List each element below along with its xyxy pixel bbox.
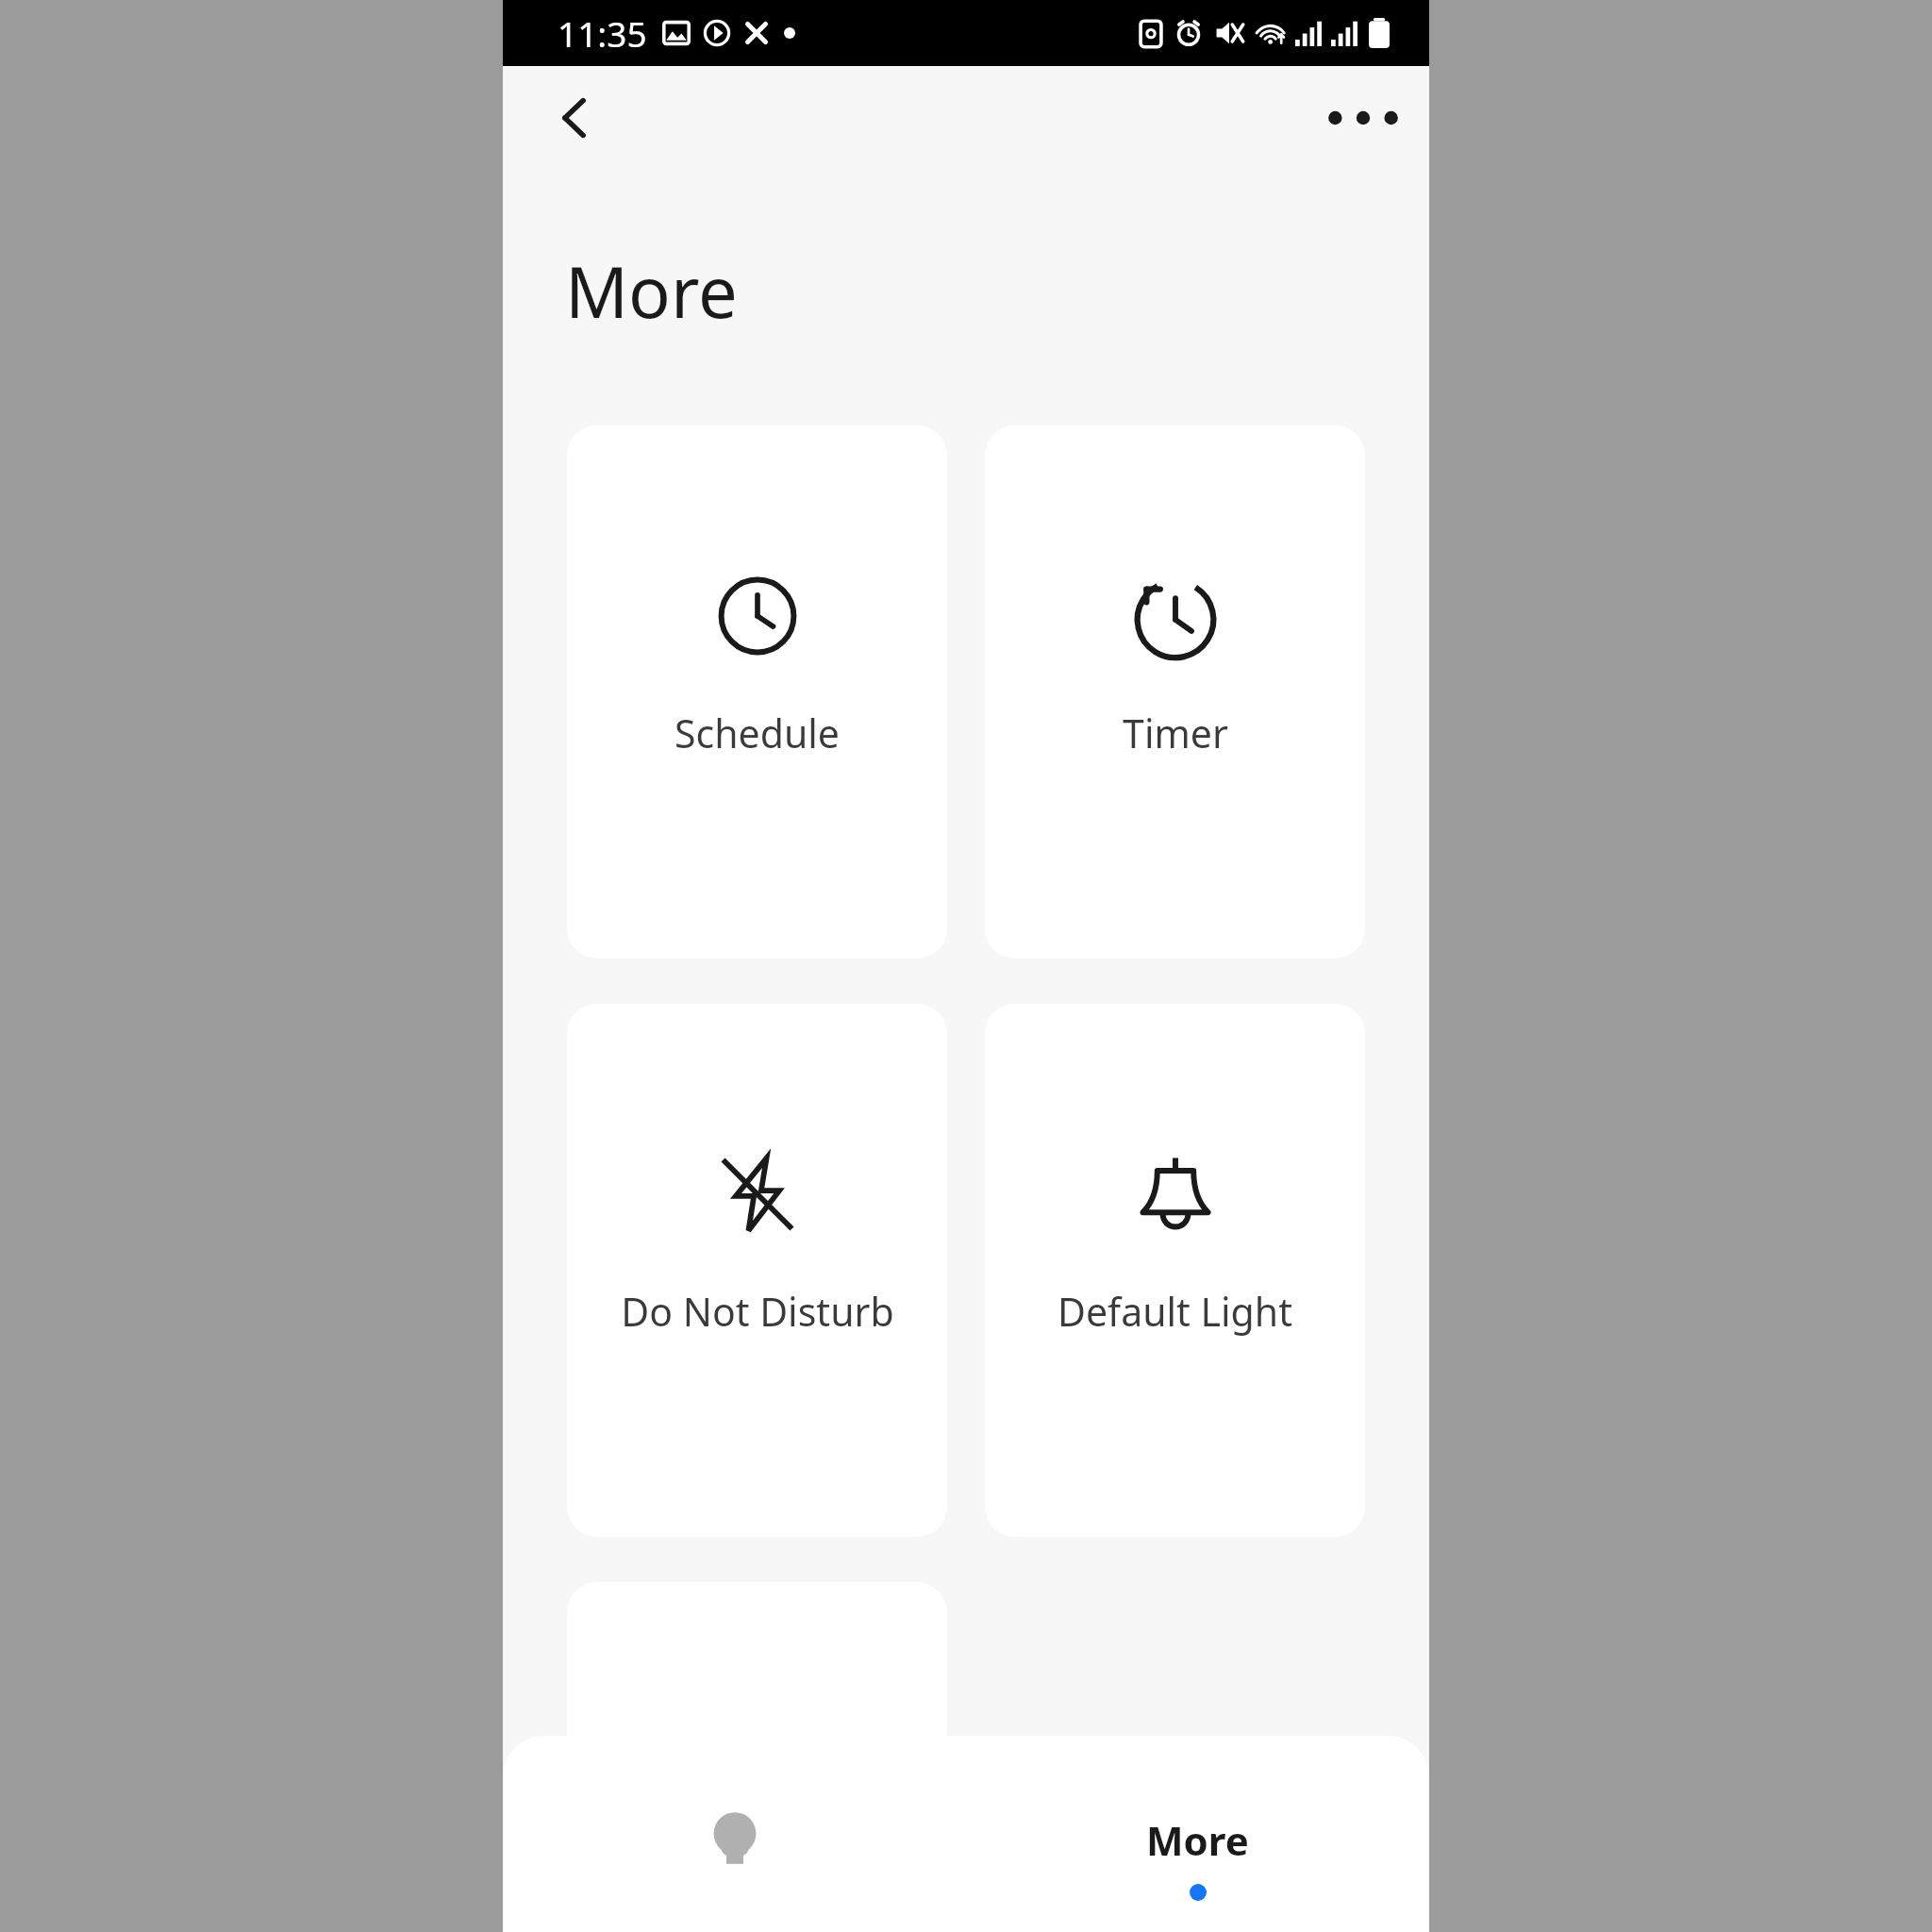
button[interactable]: Schedule bbox=[567, 425, 947, 958]
staticText: Timer bbox=[1123, 707, 1228, 759]
staticText: More bbox=[565, 243, 738, 339]
staticText: Do Not Disturb bbox=[621, 1285, 894, 1338]
button[interactable]: Do Not Disturb bbox=[567, 1004, 947, 1537]
button[interactable]: More options bbox=[1318, 73, 1408, 163]
button[interactable] bbox=[567, 1582, 947, 1932]
button[interactable]: Lights bbox=[503, 1736, 966, 1932]
button[interactable]: Back bbox=[529, 73, 620, 163]
button[interactable]: Timer bbox=[985, 425, 1365, 958]
staticText: 11:35 bbox=[558, 9, 647, 57]
staticText: Default Light bbox=[1058, 1285, 1292, 1338]
button[interactable]: Default Light bbox=[985, 1004, 1365, 1537]
staticText: Schedule bbox=[675, 707, 840, 759]
button[interactable]: More bbox=[966, 1736, 1429, 1932]
staticText: More bbox=[1146, 1813, 1249, 1867]
